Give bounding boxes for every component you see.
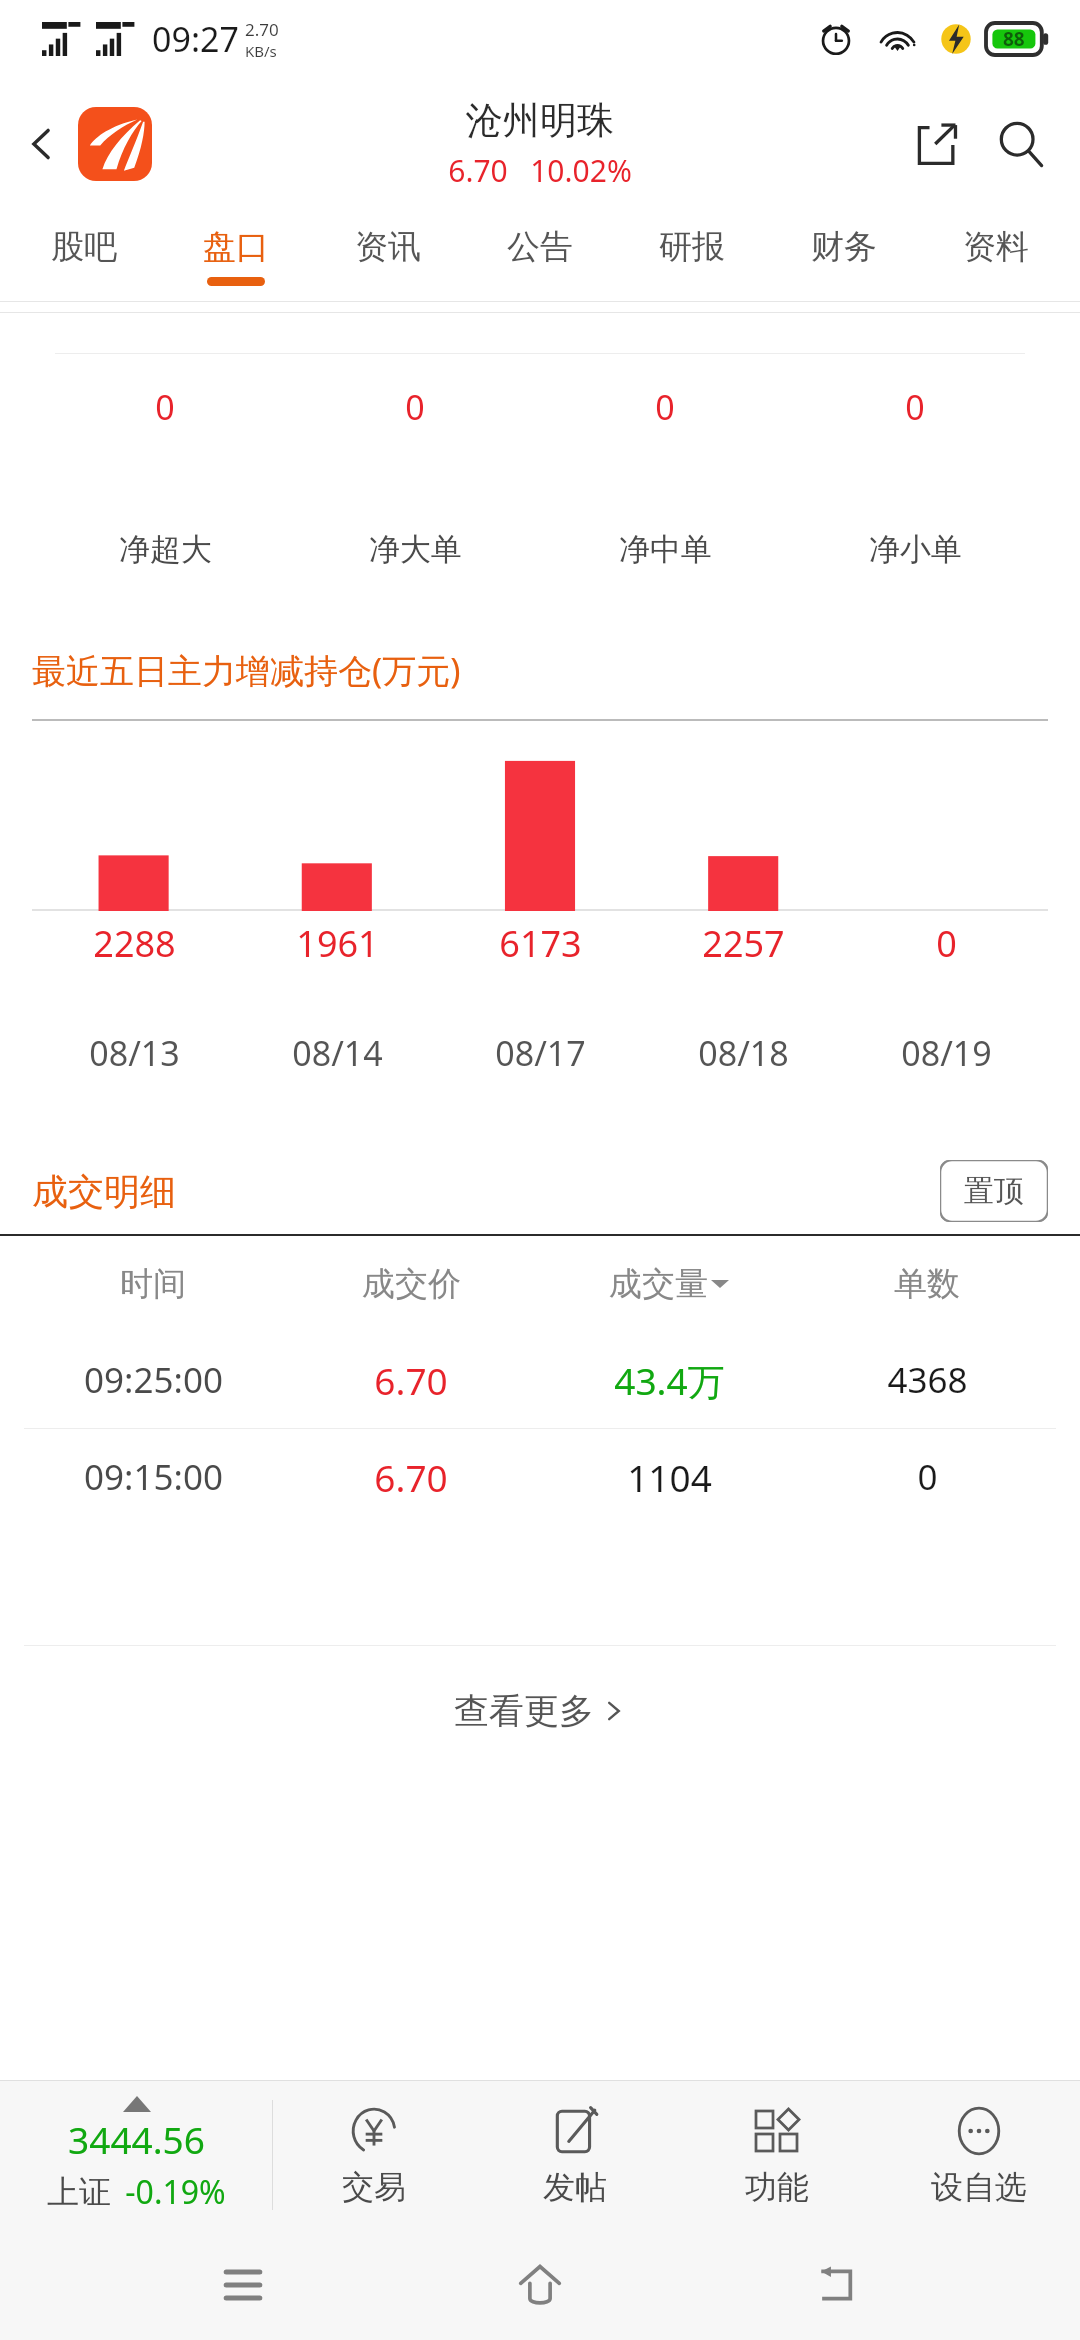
staticText: 6.70 (374, 1452, 448, 1502)
staticText: 交易 (342, 2167, 406, 2207)
staticText: 1961 (296, 919, 379, 968)
staticText: 净超大 (119, 530, 212, 569)
staticText: 设自选 (931, 2167, 1027, 2207)
staticText: 2257 (702, 919, 785, 968)
button[interactable]: Back (10, 112, 74, 176)
staticText: 0 (905, 384, 925, 430)
staticText: 08/19 (901, 1030, 992, 1076)
button[interactable]: 设自选 (878, 2080, 1080, 2230)
button[interactable]: 09:25:00 (24, 1332, 1056, 1428)
staticText: 43.4万 (614, 1355, 725, 1406)
button[interactable]: 股吧 (8, 210, 160, 302)
staticText: 2288 (93, 919, 176, 968)
button[interactable]: 资讯 (312, 210, 464, 302)
staticText: 净中单 (619, 530, 712, 569)
button[interactable]: 盘口 (160, 210, 312, 302)
staticText: 08/14 (292, 1030, 383, 1076)
button[interactable]: 资料 (920, 210, 1072, 302)
staticText: 0 (917, 1453, 938, 1501)
staticText: 资讯 (355, 226, 421, 268)
button[interactable]: Recents (188, 2230, 298, 2340)
staticText: 发帖 (543, 2167, 607, 2207)
staticText: 成交明细 (32, 1169, 176, 1214)
button[interactable]: Home (485, 2230, 595, 2340)
staticText: 时间 (120, 1263, 186, 1305)
staticText: 置顶 (964, 1172, 1024, 1210)
staticText: 净大单 (369, 530, 462, 569)
button[interactable]: 3444.56 (0, 2080, 272, 2230)
staticText: 股吧 (51, 226, 117, 268)
button[interactable]: Share (900, 107, 974, 181)
staticText: 2.70 (245, 18, 279, 41)
staticText: 88 (1003, 26, 1025, 52)
staticText: 4368 (887, 1356, 968, 1404)
staticText: 6.70 (448, 150, 508, 191)
staticText: 单数 (894, 1263, 960, 1305)
staticText: 成交价 (362, 1263, 461, 1305)
staticText: KB/s (245, 41, 277, 61)
staticText: 0 (155, 384, 175, 430)
staticText: 0 (936, 919, 957, 968)
button[interactable]: Search (984, 107, 1058, 181)
staticText: 财务 (811, 226, 877, 268)
staticText: 1104 (627, 1452, 712, 1502)
staticText: 成交量 (609, 1263, 708, 1305)
staticText: 查看更多 (454, 1689, 594, 1733)
staticText: 最近五日主力增减持仓(万元) (32, 647, 461, 693)
button[interactable]: 交易 (273, 2080, 474, 2230)
button[interactable]: 财务 (768, 210, 920, 302)
staticText: 3444.56 (68, 2114, 205, 2164)
button[interactable]: 发帖 (474, 2080, 676, 2230)
staticText: 公告 (507, 226, 573, 268)
staticText: -0.19% (125, 2170, 226, 2214)
staticText: 盘口 (203, 226, 269, 268)
staticText: 沧州明珠 (466, 97, 614, 144)
staticText: 09:25:00 (84, 1356, 223, 1404)
button[interactable]: 功能 (676, 2080, 878, 2230)
staticText: 6173 (499, 919, 582, 968)
staticText: 08/17 (495, 1030, 586, 1076)
staticText: 0 (655, 384, 675, 430)
staticText: 净小单 (869, 530, 962, 569)
staticText: 研报 (659, 226, 725, 268)
staticText: 功能 (745, 2167, 809, 2207)
button[interactable]: App logo (78, 107, 152, 181)
button[interactable]: Back (783, 2230, 893, 2340)
staticText: 6.70 (374, 1355, 448, 1405)
staticText: 09:15:00 (84, 1453, 223, 1501)
staticText: 上证 (47, 2172, 111, 2212)
staticText: 0 (405, 384, 425, 430)
button[interactable]: 置顶 (940, 1160, 1048, 1222)
staticText: 08/13 (89, 1030, 180, 1076)
button[interactable]: 09:15:00 (24, 1429, 1056, 1525)
staticText: 09:27 (152, 16, 239, 62)
button[interactable]: 查看更多 (0, 1646, 1080, 1776)
button[interactable]: 研报 (616, 210, 768, 302)
button[interactable]: 公告 (464, 210, 616, 302)
staticText: 08/18 (698, 1030, 789, 1076)
staticText: 资料 (963, 226, 1029, 268)
staticText: 10.02% (530, 150, 632, 191)
